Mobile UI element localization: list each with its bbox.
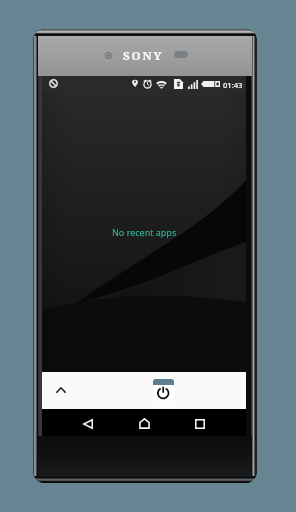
button[interactable]: Home	[132, 411, 156, 435]
staticText: 01:43	[223, 80, 243, 90]
button[interactable]: Power off	[153, 379, 174, 401]
button[interactable]: Show all apps	[51, 380, 71, 400]
button[interactable]: Back	[76, 412, 100, 436]
staticText: SONY	[123, 48, 164, 64]
staticText: No recent apps	[112, 226, 177, 238]
button[interactable]: Recent apps	[188, 412, 212, 436]
